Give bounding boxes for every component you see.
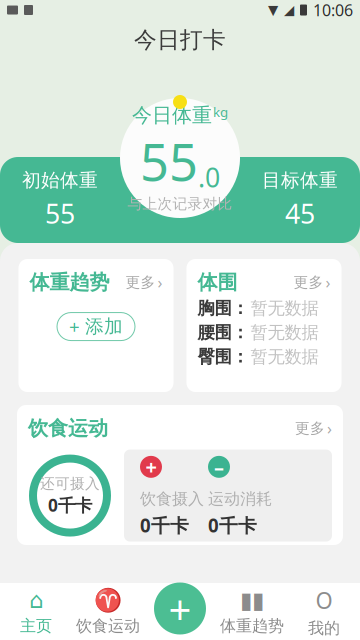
staticText: › [157, 272, 162, 293]
staticText: 暂无数据 [250, 298, 318, 319]
staticText: ▼ [268, 2, 278, 17]
staticText: 我的 [308, 618, 340, 638]
staticText: 目标体重 [262, 169, 338, 192]
staticText: 主页 [20, 616, 52, 636]
staticText: .0 [198, 159, 220, 195]
staticText: 更多 [295, 419, 325, 437]
button[interactable]: – [208, 454, 276, 538]
staticText: + [69, 314, 80, 339]
staticText: ◢ [284, 2, 294, 17]
staticText: 暂无数据 [250, 322, 318, 343]
staticText: – [214, 454, 224, 480]
staticText: 添加 [85, 315, 123, 338]
staticText: 还可摄入 [40, 474, 100, 492]
staticText: 体围 [197, 270, 237, 295]
staticText: 饮食摄入 [140, 489, 204, 509]
staticText: + [145, 454, 156, 480]
staticText: 胸围： [197, 298, 248, 319]
staticText: 暂无数据 [250, 346, 318, 367]
staticText: 今日打卡 [134, 26, 226, 54]
staticText: 饮食运动 [76, 616, 140, 636]
button[interactable]: 更多 [295, 418, 332, 439]
button[interactable]: + [57, 313, 135, 341]
staticText: 10:06 [313, 0, 353, 21]
staticText: 55 [140, 128, 198, 195]
staticText: 与上次记录对比 [127, 195, 232, 213]
staticText: ▮▮ [240, 587, 264, 613]
staticText: 初始体重 [22, 169, 98, 192]
staticText: 55 [45, 196, 75, 231]
button[interactable]: 更多 [125, 272, 162, 293]
staticText: kg [213, 103, 228, 121]
staticText: 0千卡 [48, 494, 92, 517]
staticText: 臀围： [197, 346, 248, 367]
staticText: 饮食运动 [28, 416, 108, 441]
staticText: + [168, 582, 191, 635]
staticText: 更多 [125, 273, 155, 291]
staticText: 今日体重 [132, 103, 212, 128]
staticText: 0千卡 [140, 513, 189, 538]
staticText: О [315, 585, 332, 615]
staticText: 更多 [293, 273, 323, 291]
button[interactable]: 更多 [293, 272, 330, 293]
staticText: › [327, 418, 332, 439]
staticText: 45 [285, 196, 315, 231]
button[interactable]: О [288, 583, 360, 640]
button[interactable]: ▮▮ [216, 583, 288, 640]
staticText: 0千卡 [208, 513, 257, 538]
staticText: ♈ [94, 587, 122, 613]
button[interactable]: ♈ [72, 583, 144, 640]
staticText: › [325, 272, 330, 293]
staticText: 运动消耗 [208, 489, 272, 509]
button[interactable]: + [140, 454, 208, 538]
staticText: 体重趋势 [29, 270, 109, 295]
button[interactable]: 今日体重 [115, 93, 245, 223]
staticText: ⌂ [29, 587, 43, 613]
button[interactable]: Add record [152, 580, 208, 636]
staticText: 体重趋势 [220, 616, 284, 636]
button[interactable]: ⌂ [0, 583, 72, 640]
staticText: 腰围： [197, 322, 248, 343]
